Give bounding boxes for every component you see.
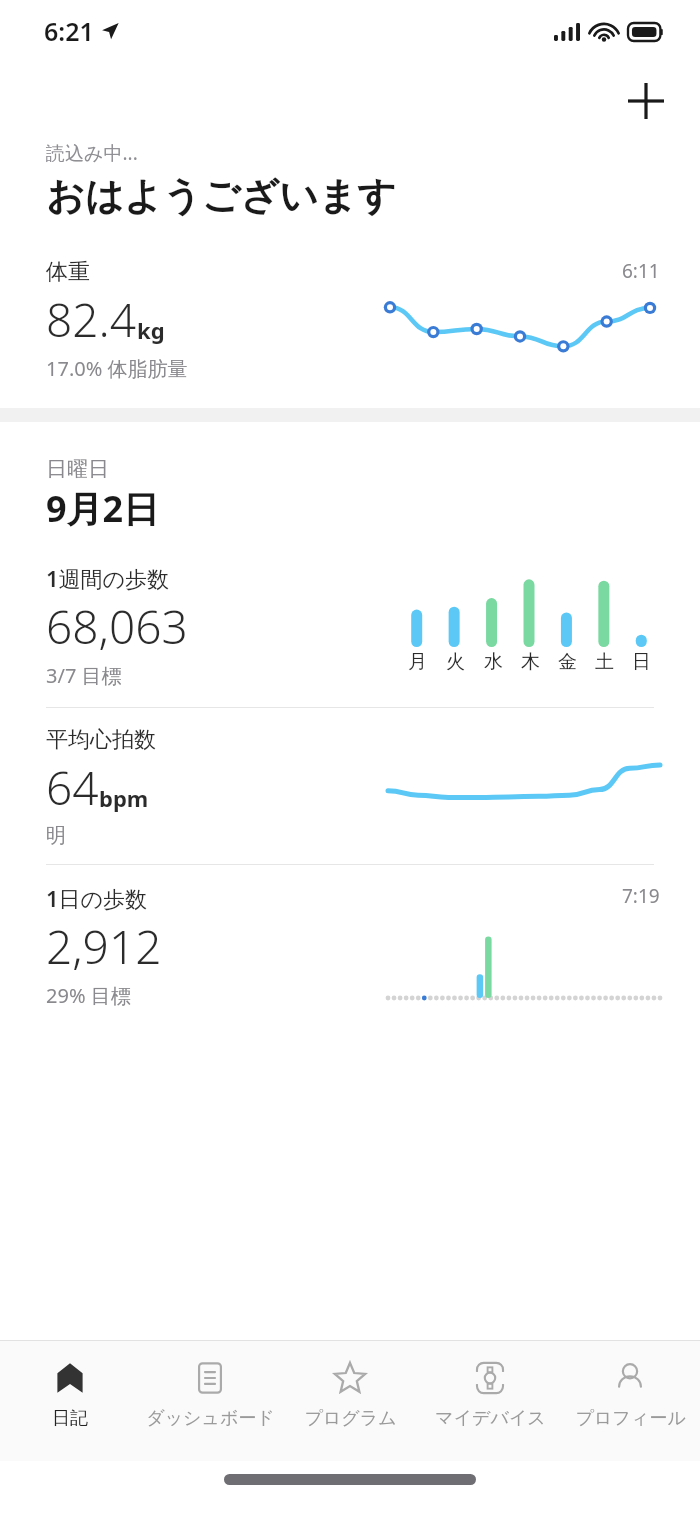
other: Programs: [329, 1357, 371, 1399]
staticText: 2,912: [46, 915, 162, 978]
staticText: おはようございます: [46, 172, 397, 220]
button[interactable]: Programs: [280, 1341, 420, 1461]
other: Profile: [609, 1357, 651, 1399]
other: Diary: [49, 1357, 91, 1399]
staticText: 6:21: [44, 14, 94, 48]
button[interactable]: Add: [622, 77, 670, 125]
staticText: 82.4: [46, 288, 137, 351]
staticText: プログラム: [304, 1407, 397, 1430]
staticText: 明: [46, 823, 66, 848]
button[interactable]: 1週間の歩数: [0, 563, 700, 689]
staticText: 7:19: [622, 883, 660, 909]
staticText: 日: [632, 650, 651, 674]
staticText: 9月2日: [46, 484, 160, 533]
staticText: マイデバイス: [435, 1407, 546, 1430]
button[interactable]: My devices: [420, 1341, 560, 1461]
staticText: 土: [595, 650, 614, 674]
staticText: bpm: [99, 783, 149, 813]
staticText: 3/7 目標: [46, 662, 122, 689]
other: My devices: [469, 1357, 511, 1399]
staticText: 月: [408, 650, 427, 674]
staticText: 日曜日: [46, 456, 109, 482]
other: Dashboard: [189, 1357, 231, 1399]
staticText: プロフィール: [575, 1407, 686, 1430]
button[interactable]: 体重: [0, 258, 700, 382]
staticText: 29% 目標: [46, 982, 131, 1009]
staticText: 64: [46, 756, 99, 819]
staticText: 日記: [52, 1407, 88, 1430]
staticText: 金: [558, 650, 577, 674]
button[interactable]: Profile: [560, 1341, 700, 1461]
staticText: 体重: [46, 258, 90, 286]
staticText: 68,063: [46, 595, 188, 658]
staticText: ダッシュボード: [146, 1407, 275, 1430]
button[interactable]: Diary: [0, 1341, 140, 1461]
staticText: 17.0% 体脂肪量: [46, 355, 188, 382]
staticText: kg: [137, 315, 165, 345]
button[interactable]: 1日の歩数: [0, 883, 700, 1009]
staticText: 火: [446, 650, 465, 674]
button[interactable]: Dashboard: [140, 1341, 280, 1461]
staticText: 木: [521, 650, 540, 674]
staticText: 1週間の歩数: [46, 563, 170, 593]
staticText: 読込み中...: [46, 140, 138, 166]
staticText: 水: [484, 650, 503, 674]
staticText: 平均心拍数: [46, 726, 156, 754]
staticText: 1日の歩数: [46, 883, 148, 913]
staticText: 6:11: [622, 258, 660, 284]
button[interactable]: 平均心拍数: [0, 726, 700, 848]
